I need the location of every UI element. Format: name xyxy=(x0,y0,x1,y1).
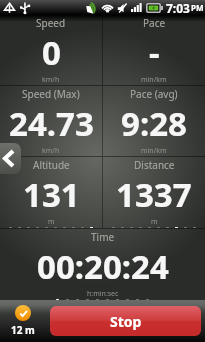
staticText: 131 xyxy=(23,172,80,217)
staticText: Altitude xyxy=(33,158,70,172)
button[interactable]: Altitude xyxy=(0,157,102,228)
staticText: Distance xyxy=(134,158,175,172)
staticText: PM xyxy=(191,2,204,13)
staticText: 00:20:24 xyxy=(37,244,169,289)
staticText: Time xyxy=(91,230,115,244)
staticText: h:min:sec xyxy=(87,289,119,299)
staticText: min/km xyxy=(141,146,167,156)
staticText: Speed (Max) xyxy=(22,87,80,101)
staticText: 24.73 xyxy=(9,101,94,146)
staticText: 9:28 xyxy=(121,101,187,146)
staticText: Speed xyxy=(36,16,66,30)
staticText: 1337 xyxy=(116,172,192,217)
staticText: m xyxy=(151,217,158,227)
button[interactable]: Speed xyxy=(0,15,102,85)
staticText: km/h xyxy=(42,75,60,85)
staticText: Pace xyxy=(143,16,166,30)
staticText: 0 xyxy=(42,30,61,75)
button[interactable]: GPS accuracy 12 m xyxy=(7,305,39,337)
button[interactable]: Pace (avg) xyxy=(103,86,205,156)
staticText: Stop xyxy=(110,312,142,331)
staticText: - xyxy=(149,30,160,75)
staticText: 12 m xyxy=(11,323,35,337)
staticText: Pace (avg) xyxy=(130,87,178,101)
button[interactable]: Pace xyxy=(103,15,205,85)
staticText: 7:03 xyxy=(166,0,190,15)
staticText: min/km xyxy=(141,75,167,85)
staticText: km/h xyxy=(42,146,60,156)
staticText: m xyxy=(48,217,55,227)
button[interactable]: Time xyxy=(0,229,205,300)
button[interactable]: Previous page xyxy=(0,143,21,174)
button[interactable]: Distance xyxy=(103,157,205,228)
button[interactable]: Stop xyxy=(50,306,201,336)
button[interactable]: Speed (Max) xyxy=(0,86,102,156)
